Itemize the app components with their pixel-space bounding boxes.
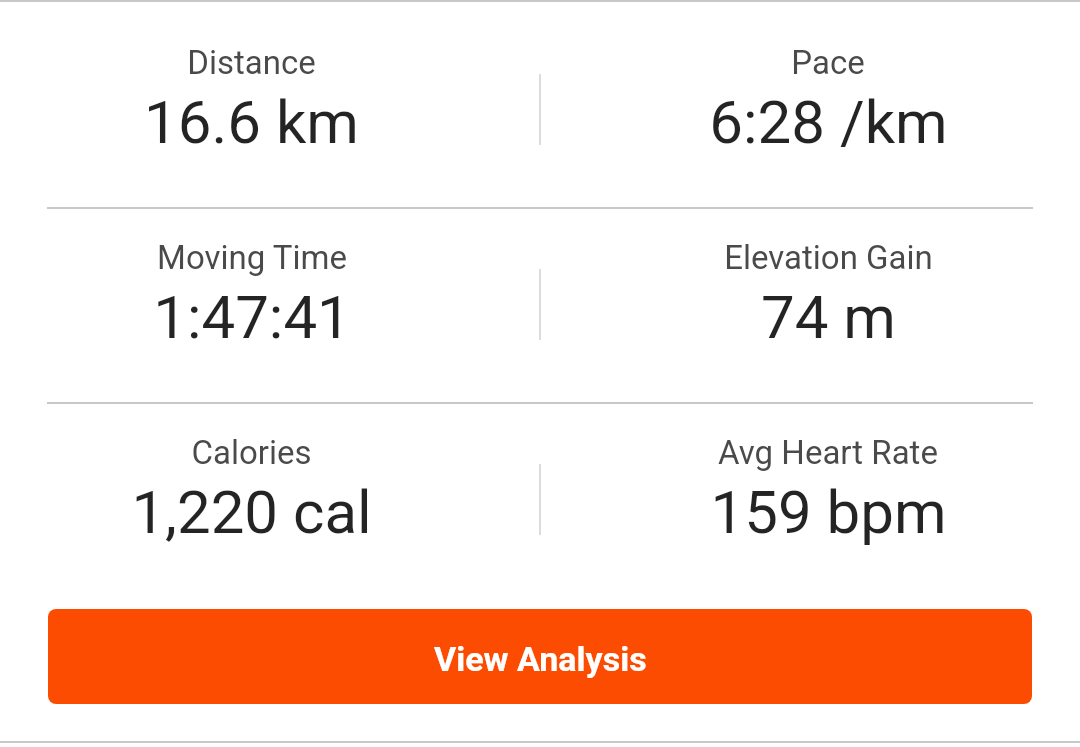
staticText: 16.6 km	[144, 87, 359, 157]
staticText: 1:47:41	[153, 282, 351, 352]
button[interactable]: Moving Time	[0, 207, 503, 402]
staticText: Pace	[791, 43, 865, 82]
button[interactable]: Pace	[576, 12, 1080, 207]
button[interactable]: Distance	[0, 12, 503, 207]
staticText: Elevation Gain	[724, 238, 933, 277]
button[interactable]: Elevation Gain	[576, 207, 1080, 402]
button[interactable]: Calories	[0, 402, 503, 597]
staticText: Calories	[191, 433, 312, 472]
staticText: Distance	[187, 43, 316, 82]
staticText: 74 m	[761, 282, 896, 352]
button[interactable]: View Analysis	[48, 609, 1032, 704]
button[interactable]: Avg Heart Rate	[576, 402, 1080, 597]
staticText: Avg Heart Rate	[718, 433, 938, 472]
staticText: 1,220 cal	[131, 477, 372, 547]
staticText: 6:28 /km	[709, 87, 948, 157]
staticText: Moving Time	[157, 238, 347, 277]
staticText: 159 bpm	[710, 477, 947, 547]
staticText: View Analysis	[434, 639, 647, 679]
